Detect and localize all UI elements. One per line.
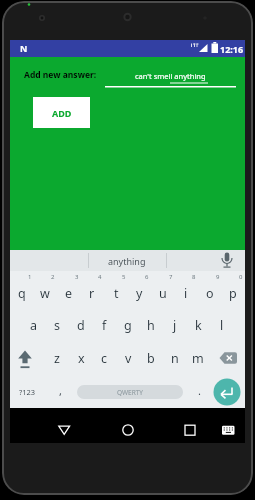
- button[interactable]: h: [141, 316, 161, 335]
- staticText: d: [77, 317, 85, 334]
- staticText: v: [125, 350, 132, 367]
- button[interactable]: [176, 416, 204, 442]
- button[interactable]: x: [71, 349, 91, 368]
- button[interactable]: n: [165, 349, 185, 368]
- button[interactable]: q: [12, 284, 32, 303]
- button[interactable]: f: [94, 316, 114, 335]
- button[interactable]: u: [153, 284, 173, 303]
- staticText: e: [65, 285, 73, 302]
- button[interactable]: [213, 378, 241, 406]
- staticText: h: [147, 317, 155, 334]
- staticText: u: [159, 285, 167, 302]
- button[interactable]: t: [106, 284, 126, 303]
- staticText: w: [40, 285, 50, 302]
- staticText: c: [101, 350, 108, 367]
- staticText: i: [184, 285, 188, 302]
- staticText: 6: [145, 273, 149, 281]
- button[interactable]: QWERTY: [77, 385, 183, 399]
- staticText: 12:16: [220, 43, 244, 55]
- button[interactable]: e: [59, 284, 79, 303]
- button[interactable]: ?123: [13, 384, 41, 400]
- staticText: QWERTY: [117, 388, 144, 397]
- staticText: r: [89, 285, 95, 302]
- staticText: m: [192, 350, 204, 367]
- button[interactable]: l: [212, 316, 232, 335]
- staticText: p: [229, 285, 237, 302]
- staticText: k: [195, 317, 202, 334]
- button[interactable]: r: [82, 284, 102, 303]
- staticText: l: [220, 317, 224, 334]
- button[interactable]: b: [141, 349, 161, 368]
- staticText: n: [171, 350, 179, 367]
- staticText: 1: [28, 273, 32, 281]
- staticText: Add new answer:: [24, 69, 97, 81]
- button[interactable]: j: [165, 316, 185, 335]
- staticText: 3: [75, 273, 79, 281]
- button[interactable]: v: [118, 349, 138, 368]
- button[interactable]: anything: [97, 250, 157, 271]
- button[interactable]: m: [188, 349, 208, 368]
- staticText: .: [198, 383, 201, 398]
- button[interactable]: g: [118, 316, 138, 335]
- button[interactable]: s: [47, 316, 67, 335]
- button[interactable]: d: [71, 316, 91, 335]
- button[interactable]: [114, 416, 142, 442]
- button[interactable]: [50, 416, 78, 442]
- staticText: s: [54, 317, 60, 334]
- staticText: f: [102, 317, 107, 334]
- button[interactable]: y: [129, 284, 149, 303]
- staticText: can't smell anything: [135, 71, 206, 81]
- staticText: b: [147, 350, 155, 367]
- staticText: t: [114, 285, 119, 302]
- button[interactable]: [14, 348, 38, 368]
- staticText: 4: [98, 273, 102, 281]
- button[interactable]: p: [223, 284, 243, 303]
- staticText: ?123: [19, 387, 36, 397]
- staticText: ADD: [52, 107, 72, 119]
- staticText: 7: [169, 273, 173, 281]
- staticText: g: [124, 317, 132, 334]
- button[interactable]: i: [176, 284, 196, 303]
- staticText: 8: [192, 273, 196, 281]
- button[interactable]: a: [24, 316, 44, 335]
- button[interactable]: c: [94, 349, 114, 368]
- button[interactable]: o: [200, 284, 220, 303]
- staticText: z: [54, 350, 60, 367]
- staticText: o: [206, 285, 214, 302]
- staticText: 5: [122, 273, 126, 281]
- button[interactable]: ,: [54, 381, 66, 399]
- button[interactable]: z: [47, 349, 67, 368]
- staticText: 0: [239, 273, 243, 281]
- staticText: 2: [51, 273, 55, 281]
- staticText: x: [78, 350, 85, 367]
- staticText: y: [136, 285, 143, 302]
- staticText: j: [173, 317, 177, 334]
- staticText: ,: [59, 383, 62, 398]
- button[interactable]: ADD: [33, 97, 90, 128]
- staticText: a: [30, 317, 38, 334]
- staticText: q: [18, 285, 26, 302]
- button[interactable]: .: [193, 381, 205, 399]
- staticText: anything: [108, 255, 146, 267]
- button[interactable]: k: [188, 316, 208, 335]
- staticText: N: [20, 42, 28, 54]
- button[interactable]: w: [35, 284, 55, 303]
- staticText: 9: [216, 273, 220, 281]
- button[interactable]: [216, 416, 242, 442]
- button[interactable]: [216, 348, 240, 368]
